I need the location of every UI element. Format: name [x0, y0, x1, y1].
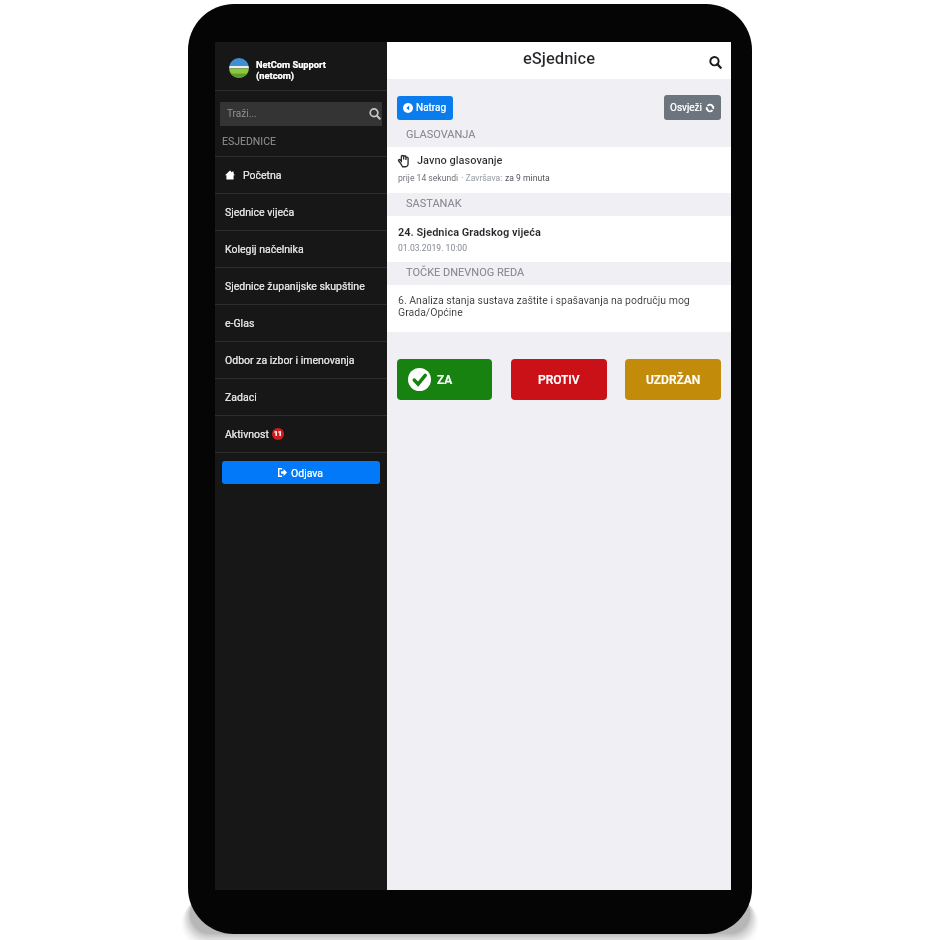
staticText: ZA	[437, 373, 453, 387]
staticText: PROTIV	[538, 373, 580, 387]
button[interactable]: Odbor za izbor i imenovanja	[215, 342, 387, 378]
staticText: 24. Sjednica Gradskog vijeća	[398, 226, 541, 239]
button[interactable]: PROTIV	[511, 359, 607, 400]
staticText: SASTANAK	[406, 197, 462, 210]
staticText: Sjednice županijske skupštine	[225, 280, 365, 292]
button[interactable]: Odjava	[222, 461, 380, 484]
button[interactable]: ZA	[397, 359, 492, 400]
staticText: UZDRŽAN	[646, 373, 701, 387]
button[interactable]: Sjednice županijske skupštine	[215, 268, 387, 304]
staticText: Osvježi	[670, 102, 702, 114]
button[interactable]: Natrag	[397, 96, 453, 120]
staticText: Sjednice vijeća	[225, 206, 295, 218]
staticText: · Završava:	[459, 173, 505, 183]
button[interactable]: Osvježi	[664, 95, 721, 120]
button[interactable]: Search	[358, 102, 382, 126]
staticText: Javno glasovanje	[417, 154, 503, 167]
staticText: za 9 minuta	[505, 173, 550, 183]
staticText: (netcom)	[256, 70, 295, 81]
staticText: Odjava	[291, 467, 324, 479]
staticText: ESJEDNICE	[222, 135, 277, 147]
staticText: NetCom Support	[256, 59, 326, 70]
staticText: Zadaci	[225, 391, 257, 403]
button[interactable]: Search	[704, 51, 726, 73]
button[interactable]: Javno glasovanje	[387, 147, 731, 193]
staticText: Traži...	[227, 108, 257, 120]
staticText: Kolegij načelnika	[225, 243, 304, 255]
staticText: Natrag	[416, 102, 447, 114]
staticText: 01.03.2019. 10:00	[398, 243, 467, 253]
button[interactable]: Aktivnost	[215, 416, 387, 452]
button[interactable]: Početna	[215, 157, 387, 193]
button[interactable]: e-Glas	[215, 305, 387, 341]
staticText: 11	[274, 430, 283, 438]
button[interactable]: Zadaci	[215, 379, 387, 415]
button[interactable]: UZDRŽAN	[625, 359, 721, 400]
button[interactable]: NetCom Support	[215, 42, 387, 90]
staticText: Početna	[243, 169, 282, 181]
button[interactable]: 24. Sjednica Gradskog vijeća	[387, 216, 731, 262]
button[interactable]: 6. Analiza stanja sustava zaštite i spaš…	[387, 285, 731, 332]
staticText: 6. Analiza stanja sustava zaštite i spaš…	[398, 294, 719, 319]
staticText: TOČKE DNEVNOG REDA	[406, 266, 525, 279]
staticText: eSjednice	[523, 49, 596, 68]
staticText: Odbor za izbor i imenovanja	[225, 354, 355, 366]
staticText: Aktivnost	[225, 428, 269, 440]
button[interactable]: Kolegij načelnika	[215, 231, 387, 267]
staticText: prije 14 sekundi	[398, 173, 459, 183]
button[interactable]: Traži...	[220, 102, 382, 126]
staticText: e-Glas	[225, 317, 255, 329]
button[interactable]: Sjednice vijeća	[215, 194, 387, 230]
staticText: GLASOVANJA	[406, 128, 476, 141]
